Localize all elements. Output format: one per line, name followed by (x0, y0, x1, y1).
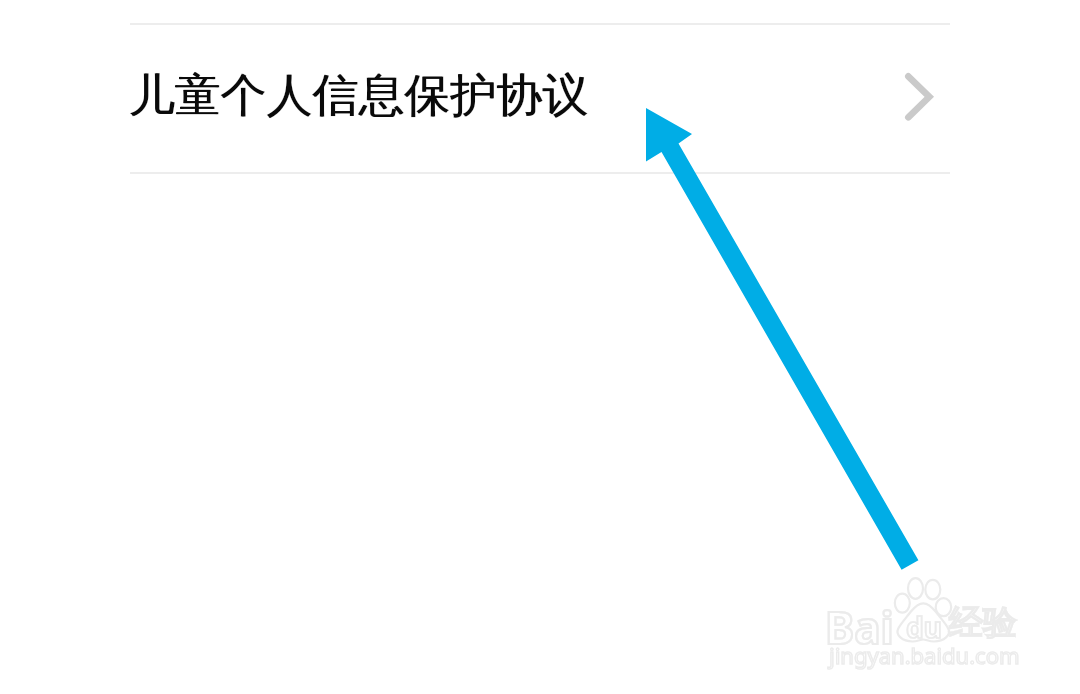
staticText: 儿童个人信息保护协议 (128, 67, 588, 125)
staticText: 经验 (949, 601, 1017, 644)
other: 打开 (866, 23, 960, 173)
staticText: du (906, 608, 942, 646)
button[interactable]: 儿童个人信息保护协议 (0, 23, 1080, 173)
staticText: Bai (825, 597, 894, 657)
staticText: jingyan.baidu.com (829, 640, 1020, 670)
staticText: 儿童个人信息保护协议 (129, 67, 589, 125)
